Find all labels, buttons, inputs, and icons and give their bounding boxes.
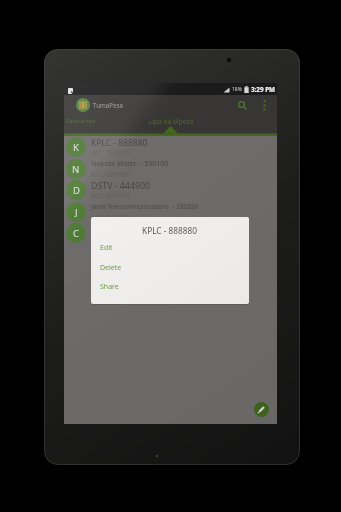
staticText: KPLC - 888880 <box>91 137 148 149</box>
button[interactable] <box>258 95 271 115</box>
staticText: TumaPesa <box>93 101 123 109</box>
button[interactable]: K <box>64 136 277 158</box>
staticText: KPLC - 888880 <box>142 225 198 236</box>
button[interactable] <box>235 95 249 115</box>
button[interactable]: J <box>64 201 277 223</box>
staticText: Lipa na Mpesa <box>149 117 194 126</box>
staticText: N <box>72 163 80 176</box>
staticText: D <box>73 184 80 197</box>
staticText: K <box>73 141 79 154</box>
staticText: Delete <box>100 263 122 273</box>
staticText: 3:29 PM <box>251 85 276 94</box>
button[interactable]: Edit <box>100 238 240 258</box>
staticText: C <box>73 227 80 240</box>
button[interactable]: Delete <box>100 258 240 278</box>
staticText: Edit <box>100 243 113 253</box>
button[interactable]: Share <box>100 277 240 297</box>
staticText: Share <box>100 282 119 292</box>
button[interactable]: D <box>64 179 277 201</box>
staticText: A/C: 000000 <box>91 148 131 158</box>
button[interactable] <box>254 402 269 417</box>
staticText: A/C: 000000 <box>91 191 131 201</box>
staticText: J <box>75 206 78 219</box>
staticText: A/C: 000000 <box>91 213 131 223</box>
staticText: A/C: 000000 <box>91 170 131 180</box>
staticText: DSTV - 444900 <box>91 180 151 192</box>
button[interactable]: Favourites <box>64 115 134 133</box>
button[interactable]: N <box>64 158 277 180</box>
staticText: Favourites <box>66 117 96 125</box>
button[interactable]: Lipa na Mpesa <box>140 115 202 133</box>
staticText: 18% <box>232 86 242 93</box>
staticText: Jamii Telecommunications - 330330 <box>91 202 199 211</box>
staticText: Nairobi Water - 530100 <box>91 159 169 169</box>
button[interactable]: C <box>64 222 277 244</box>
